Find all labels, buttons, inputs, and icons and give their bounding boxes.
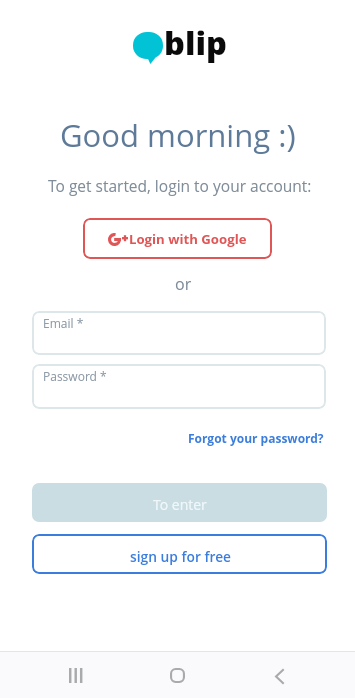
staticText: sign up for free — [130, 547, 232, 566]
button[interactable]: Back — [255, 653, 303, 698]
button[interactable]: Forgot your password? — [188, 430, 324, 446]
staticText: blip — [164, 20, 227, 64]
staticText: Password * — [43, 368, 107, 384]
staticText: or — [175, 273, 192, 295]
button[interactable]: To enter — [32, 483, 327, 522]
staticText: Forgot your password? — [188, 430, 324, 446]
staticText: Email * — [43, 315, 84, 331]
button[interactable]: Home — [153, 652, 201, 698]
staticText: Login with Google — [129, 230, 247, 248]
button[interactable]: Email * — [32, 311, 326, 355]
button[interactable]: sign up for free — [32, 534, 327, 574]
staticText: Good morning :) — [60, 114, 296, 156]
button[interactable]: Login with Google — [83, 218, 272, 259]
staticText: To get started, login to your account: — [48, 175, 312, 196]
staticText: To enter — [153, 495, 207, 514]
button[interactable]: Password * — [32, 364, 326, 409]
button[interactable]: Recent apps — [52, 652, 100, 698]
